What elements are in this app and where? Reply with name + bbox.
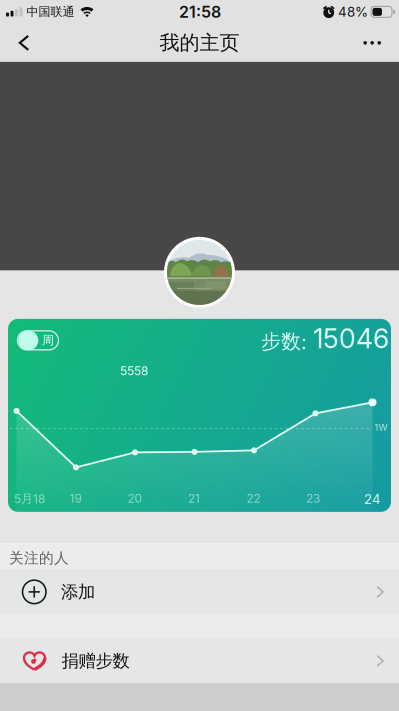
staticText: 捐赠步数 [61,650,129,672]
staticText: 步数: [261,329,313,354]
button[interactable]: 周 [17,330,59,351]
staticText: 关注的人 [9,549,69,567]
staticText: 5558 [120,364,148,378]
staticText: 19 [69,491,81,506]
button[interactable]: Back [0,24,30,62]
staticText: 添加 [61,581,95,603]
staticText: 48% [338,4,368,20]
staticText: 23 [306,491,320,506]
button[interactable]: More [363,27,399,59]
button[interactable]: 添加 [0,569,399,615]
staticText: 中国联通 [26,4,74,19]
staticText: 21:58 [179,2,221,21]
staticText: 21 [188,491,200,506]
staticText: 周 [42,333,54,348]
staticText: 24 [364,491,381,507]
staticText: 15046 [313,323,389,354]
staticText: 20 [127,491,142,506]
staticText: 我的主页 [159,31,239,55]
staticText: 1W [374,422,387,433]
button[interactable]: 捐赠步数 [0,639,399,683]
staticText: 22 [246,491,260,506]
staticText: 5月18 [14,491,45,506]
